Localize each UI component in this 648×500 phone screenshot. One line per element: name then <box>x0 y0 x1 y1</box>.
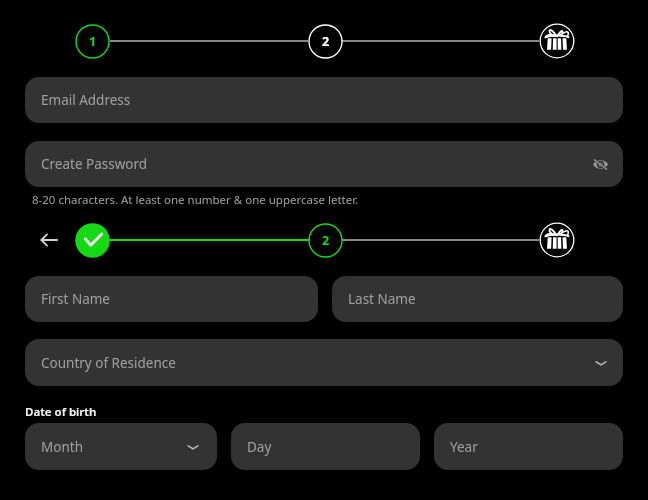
staticText: 2 <box>322 232 330 249</box>
staticText: 1 <box>89 33 97 50</box>
button[interactable]: Back <box>33 226 61 254</box>
button[interactable]: Step 1 complete <box>74 222 111 259</box>
staticText: Country of Residence <box>41 354 176 372</box>
staticText: 2 <box>322 33 330 50</box>
button[interactable]: Year <box>434 423 623 470</box>
button[interactable]: Step 1 <box>74 23 111 60</box>
staticText: Last Name <box>348 290 416 308</box>
button[interactable]: Rewards <box>539 23 575 59</box>
staticText: Create Password <box>41 155 148 173</box>
staticText: Date of birth <box>25 404 97 420</box>
button[interactable]: Email Address <box>25 77 623 123</box>
staticText: First Name <box>41 290 110 308</box>
staticText: Day <box>247 438 272 456</box>
button[interactable]: Month <box>25 423 217 470</box>
button[interactable]: Show password <box>586 150 614 178</box>
staticText: Year <box>450 438 478 456</box>
button[interactable]: Rewards <box>539 222 575 258</box>
button[interactable]: Last Name <box>332 276 623 322</box>
button[interactable]: Day <box>231 423 420 470</box>
staticText: Month <box>41 438 83 456</box>
staticText: 8-20 characters. At least one number & o… <box>32 192 359 208</box>
button[interactable]: First Name <box>25 276 318 322</box>
button[interactable]: Step 2 <box>307 23 344 60</box>
button[interactable]: Create Password <box>25 141 623 187</box>
staticText: Email Address <box>41 91 131 109</box>
button[interactable]: Country of Residence <box>25 339 623 386</box>
button[interactable]: Step 2 <box>307 222 344 259</box>
